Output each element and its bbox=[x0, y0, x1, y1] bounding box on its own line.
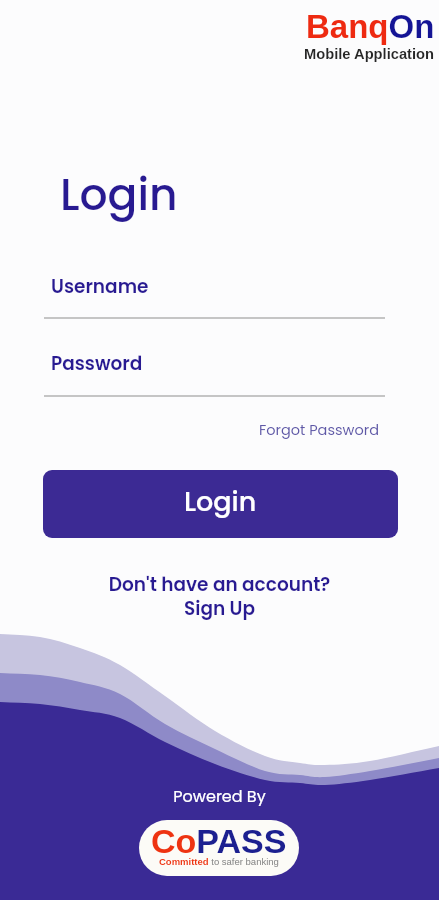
staticText: Mobile Application bbox=[304, 46, 435, 62]
button[interactable]: Forgot Password bbox=[259, 420, 379, 440]
other: CoPASS - committed to safer banking bbox=[139, 820, 299, 876]
staticText: Committed to safer banking bbox=[159, 856, 279, 867]
staticText: Powered By bbox=[0, 785, 439, 807]
staticText: Don't have an account? bbox=[0, 572, 439, 598]
staticText: CoPASS bbox=[151, 822, 287, 860]
staticText: Login bbox=[60, 164, 178, 226]
staticText: Username bbox=[51, 274, 149, 300]
staticText: BanqOn bbox=[306, 8, 435, 45]
staticText: Login bbox=[184, 483, 257, 521]
staticText: Password bbox=[51, 351, 143, 377]
button[interactable]: Login bbox=[43, 470, 398, 538]
button[interactable]: Sign Up bbox=[0, 596, 439, 622]
